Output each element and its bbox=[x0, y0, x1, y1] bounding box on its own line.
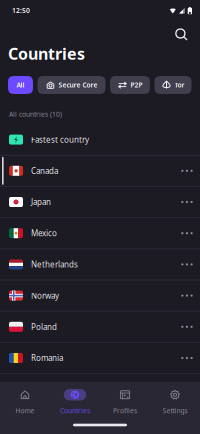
button[interactable]: Netherlands bbox=[0, 249, 200, 279]
staticText: Countries bbox=[8, 43, 85, 64]
staticText: Home bbox=[15, 406, 34, 415]
staticText: Norway bbox=[31, 290, 59, 301]
staticText: Profiles bbox=[113, 406, 137, 415]
button[interactable]: Settings bbox=[150, 389, 200, 415]
staticText: All countries (10) bbox=[9, 110, 62, 119]
button[interactable]: Mexico bbox=[0, 218, 200, 248]
staticText: 12:50 bbox=[12, 6, 30, 15]
staticText: Netherlands bbox=[31, 259, 78, 270]
staticText: Settings bbox=[162, 406, 187, 415]
staticText: Mexico bbox=[31, 228, 57, 238]
button[interactable]: Tor bbox=[154, 76, 191, 94]
button[interactable]: Secure Core bbox=[37, 76, 105, 94]
staticText: P2P bbox=[130, 81, 142, 89]
button[interactable]: Poland bbox=[0, 312, 200, 342]
button[interactable]: Countries bbox=[50, 389, 100, 415]
button[interactable]: Profiles bbox=[100, 389, 150, 415]
staticText: Secure Core bbox=[58, 81, 97, 89]
staticText: Fastest country bbox=[31, 134, 89, 145]
button[interactable]: Japan bbox=[0, 187, 200, 217]
staticText: Canada bbox=[31, 165, 58, 176]
button[interactable]: P2P bbox=[110, 76, 150, 94]
staticText: Poland bbox=[31, 321, 57, 332]
staticText: All bbox=[16, 81, 24, 89]
button[interactable]: Fastest country bbox=[0, 124, 200, 155]
staticText: Romania bbox=[31, 353, 63, 363]
staticText: Tor bbox=[174, 81, 184, 89]
staticText: Countries bbox=[60, 406, 90, 415]
button[interactable]: Romania bbox=[0, 343, 200, 373]
button[interactable]: Norway bbox=[0, 280, 200, 311]
button[interactable]: Home bbox=[0, 389, 50, 415]
button[interactable]: Canada bbox=[0, 156, 200, 186]
button[interactable]: All bbox=[8, 76, 33, 94]
button[interactable]: Search bbox=[168, 21, 194, 47]
staticText: Japan bbox=[31, 197, 51, 207]
